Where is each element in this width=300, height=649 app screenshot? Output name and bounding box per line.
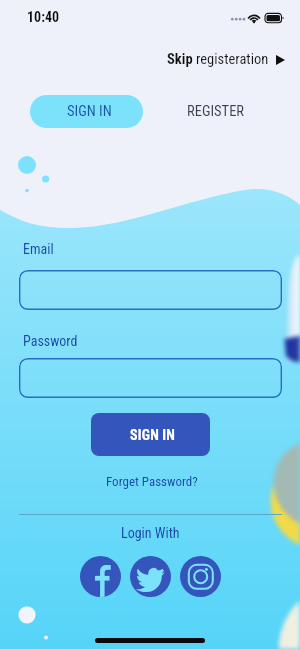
button[interactable]: Skip xyxy=(155,47,297,72)
staticText: SIGN IN xyxy=(67,103,112,120)
button[interactable]: Twitter xyxy=(130,556,171,597)
staticText: Forget Password? xyxy=(106,474,198,489)
staticText: Email xyxy=(23,241,54,257)
staticText: Password xyxy=(23,333,78,349)
button[interactable]: Instagram xyxy=(180,556,221,597)
staticText: Login With xyxy=(121,525,180,541)
button[interactable]: REGISTER xyxy=(175,95,257,128)
staticText: SIGN IN xyxy=(130,427,176,443)
staticText: Skip xyxy=(167,51,196,68)
button[interactable] xyxy=(19,270,282,310)
staticText: REGISTER xyxy=(187,103,245,120)
button[interactable]: SIGN IN xyxy=(30,95,143,128)
button[interactable]: SIGN IN xyxy=(91,413,210,456)
staticText: registeration xyxy=(196,51,269,68)
button[interactable] xyxy=(19,358,282,398)
button[interactable]: Forget Password? xyxy=(98,472,206,491)
button[interactable]: Facebook xyxy=(80,556,121,597)
staticText: 10:40 xyxy=(27,9,60,25)
